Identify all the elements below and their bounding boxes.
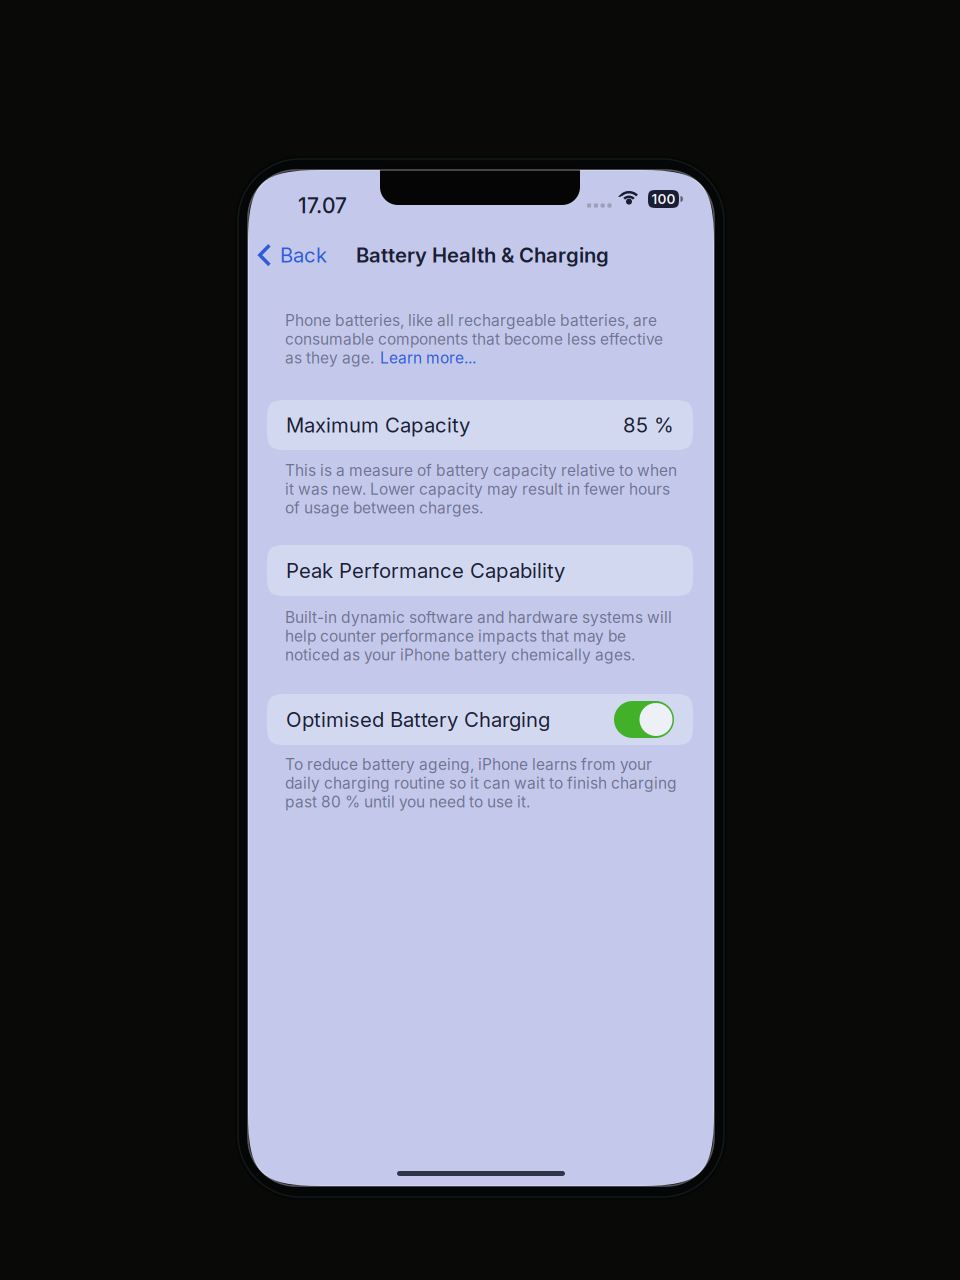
button[interactable]: Optimised Battery Charging [614, 701, 674, 738]
staticText: Learn more... [380, 348, 476, 367]
button[interactable]: Learn more... [380, 348, 476, 367]
staticText: daily charging routine so it can wait to… [285, 774, 677, 793]
staticText: Maximum Capacity [286, 413, 470, 437]
staticText: of usage between charges. [285, 498, 483, 517]
staticText: noticed as your iPhone battery chemicall… [285, 645, 635, 664]
staticText: Phone batteries, like all rechargeable b… [285, 311, 657, 330]
staticText: This is a measure of battery capacity re… [285, 461, 677, 480]
staticText: past 80 % until you need to use it. [285, 792, 530, 811]
staticText: help counter performance impacts that ma… [285, 627, 626, 646]
staticText: 100 [651, 191, 675, 207]
staticText: Back [280, 243, 327, 267]
staticText: as they age. [285, 348, 374, 367]
staticText: Battery Health & Charging [356, 243, 609, 267]
staticText: Peak Performance Capability [286, 558, 565, 583]
staticText: To reduce battery ageing, iPhone learns … [285, 755, 652, 774]
staticText: Optimised Battery Charging [286, 707, 550, 732]
staticText: it was new. Lower capacity may result in… [285, 480, 670, 499]
staticText: consumable components that become less e… [285, 330, 663, 349]
button[interactable]: Peak Performance Capability [267, 545, 693, 596]
button[interactable]: Back [248, 235, 331, 275]
button[interactable]: Maximum Capacity [267, 400, 693, 450]
staticText: 17.07 [298, 193, 347, 218]
staticText: 85 % [623, 413, 674, 437]
staticText: Built-in dynamic software and hardware s… [285, 608, 672, 627]
